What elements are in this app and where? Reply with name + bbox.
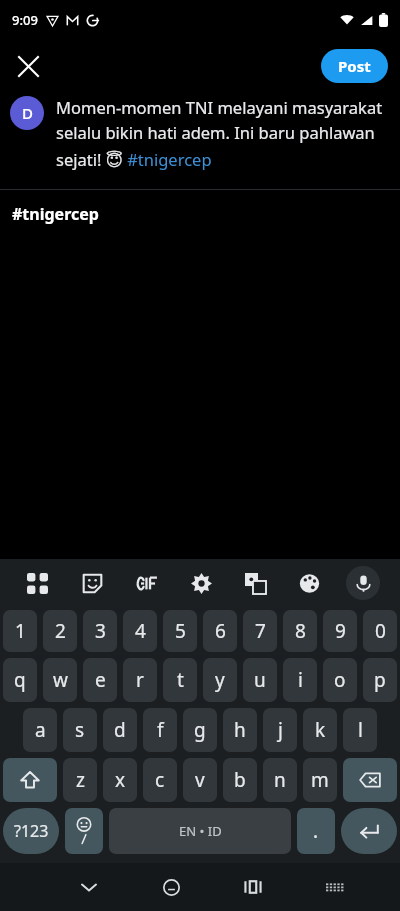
staticText: y xyxy=(215,667,225,693)
staticText: 4 xyxy=(135,618,146,644)
button[interactable]: GIF xyxy=(120,559,174,607)
button[interactable]: l xyxy=(343,708,377,752)
button[interactable]: u xyxy=(243,658,277,702)
staticText: 3 xyxy=(95,618,106,644)
staticText: q xyxy=(14,667,26,693)
button[interactable]: 6 xyxy=(203,610,237,652)
staticText: e xyxy=(95,667,106,693)
staticText: Momen-momen TNI melayani masyarakat sela… xyxy=(56,96,388,171)
staticText: Post xyxy=(338,56,371,76)
staticText: w xyxy=(53,667,68,693)
button[interactable]: Themes xyxy=(282,559,336,607)
button[interactable]: Enter xyxy=(341,808,397,854)
button[interactable]: Shift xyxy=(3,758,57,802)
button[interactable]: 0 xyxy=(363,610,397,652)
staticText: h xyxy=(234,717,246,743)
staticText: z xyxy=(76,767,85,793)
staticText: d xyxy=(114,717,126,743)
staticText: s xyxy=(75,717,85,743)
button[interactable]: . xyxy=(297,808,335,854)
button[interactable]: 2 xyxy=(43,610,77,652)
button[interactable]: k xyxy=(303,708,337,752)
button[interactable]: d xyxy=(103,708,137,752)
staticText: #tnigercep xyxy=(12,203,99,225)
staticText: o xyxy=(334,667,346,693)
button[interactable]: Settings xyxy=(174,559,228,607)
button[interactable]: z xyxy=(63,758,97,802)
button[interactable]: Apps xyxy=(10,559,65,607)
button[interactable]: q xyxy=(3,658,37,702)
button[interactable]: p xyxy=(363,658,397,702)
button[interactable]: e xyxy=(83,658,117,702)
button[interactable]: w xyxy=(43,658,77,702)
staticText: 2 xyxy=(55,618,66,644)
staticText: u xyxy=(254,667,266,693)
button[interactable]: Switch keyboard xyxy=(294,863,376,911)
button[interactable]: 1 xyxy=(3,610,37,652)
button[interactable]: Back xyxy=(48,863,130,911)
staticText: D xyxy=(22,103,33,123)
button[interactable]: Backspace xyxy=(343,758,397,802)
staticText: j xyxy=(278,717,283,743)
staticText: g xyxy=(194,717,206,743)
button[interactable]: o xyxy=(323,658,357,702)
staticText: r xyxy=(136,667,144,693)
button[interactable]: 8 xyxy=(283,610,317,652)
button[interactable]: D xyxy=(10,96,44,130)
button[interactable]: Recents xyxy=(212,863,294,911)
button[interactable]: Stickers xyxy=(65,559,120,607)
staticText: p xyxy=(374,667,386,693)
staticText: v xyxy=(195,767,205,793)
staticText: x xyxy=(115,767,126,793)
staticText: a xyxy=(35,717,46,743)
button[interactable]: 4 xyxy=(123,610,157,652)
staticText: f xyxy=(157,717,164,743)
button[interactable]: Emoji xyxy=(65,808,103,854)
button[interactable]: Voice input xyxy=(346,566,380,600)
staticText: . xyxy=(313,818,319,844)
button[interactable]: y xyxy=(203,658,237,702)
staticText: i xyxy=(298,667,303,693)
staticText: m xyxy=(311,767,329,793)
button[interactable]: t xyxy=(163,658,197,702)
staticText: c xyxy=(155,767,165,793)
staticText: 7 xyxy=(255,618,266,644)
button[interactable]: a xyxy=(23,708,57,752)
button[interactable]: r xyxy=(123,658,157,702)
button[interactable]: Translate xyxy=(228,559,282,607)
staticText: k xyxy=(315,717,326,743)
button[interactable]: g xyxy=(183,708,217,752)
staticText: 0 xyxy=(375,618,386,644)
button[interactable]: x xyxy=(103,758,137,802)
staticText: t xyxy=(177,667,184,693)
button[interactable]: c xyxy=(143,758,177,802)
staticText: EN • ID xyxy=(179,822,222,840)
button[interactable]: 3 xyxy=(83,610,117,652)
button[interactable]: Post xyxy=(321,49,388,83)
staticText: 8 xyxy=(295,618,306,644)
staticText: n xyxy=(274,767,286,793)
button[interactable]: n xyxy=(263,758,297,802)
button[interactable]: v xyxy=(183,758,217,802)
button[interactable]: j xyxy=(263,708,297,752)
staticText: b xyxy=(234,767,246,793)
staticText: 5 xyxy=(175,618,186,644)
button[interactable]: EN • ID xyxy=(109,808,291,854)
button[interactable]: #tnigercep xyxy=(0,190,400,238)
button[interactable]: 7 xyxy=(243,610,277,652)
button[interactable]: 9 xyxy=(323,610,357,652)
staticText: ?123 xyxy=(14,820,49,842)
button[interactable]: ?123 xyxy=(3,808,59,854)
button[interactable]: b xyxy=(223,758,257,802)
button[interactable]: Close xyxy=(8,46,48,86)
button[interactable]: m xyxy=(303,758,337,802)
button[interactable]: h xyxy=(223,708,257,752)
staticText: 1 xyxy=(15,618,26,644)
button[interactable]: f xyxy=(143,708,177,752)
staticText: 9 xyxy=(335,618,346,644)
button[interactable]: i xyxy=(283,658,317,702)
button[interactable]: 5 xyxy=(163,610,197,652)
button[interactable]: Home xyxy=(130,863,212,911)
button[interactable]: s xyxy=(63,708,97,752)
staticText: 9:09 xyxy=(12,11,38,29)
